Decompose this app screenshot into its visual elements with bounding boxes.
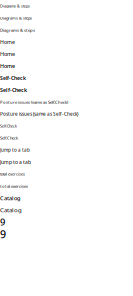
- staticText: Home: [0, 38, 15, 46]
- staticText: Catalog: [0, 206, 22, 214]
- staticText: Self-Check: [0, 74, 26, 81]
- staticText: Posture issues (same as Self-Check): [0, 99, 68, 105]
- staticText: Catalog: [0, 194, 20, 202]
- staticText: Diagrams & steps: [0, 27, 35, 33]
- staticText: Posture issues (same as Self-Check): [0, 111, 78, 117]
- staticText: Home: [0, 50, 15, 58]
- staticText: Diagrams & steps: [0, 15, 32, 21]
- staticText: Jump to a tab: [0, 159, 31, 165]
- staticText: total exercises: [0, 171, 25, 177]
- staticText: total exercises: [0, 183, 28, 189]
- staticText: Self-Check: [0, 86, 27, 94]
- staticText: Self-Check: [0, 135, 18, 141]
- staticText: Diagrams & steps: [0, 3, 30, 9]
- staticText: Home: [0, 62, 15, 70]
- staticText: Self-Check: [0, 123, 17, 129]
- staticText: 9: [0, 216, 5, 228]
- staticText: 9: [0, 227, 6, 241]
- staticText: Jump to a tab: [0, 147, 30, 153]
